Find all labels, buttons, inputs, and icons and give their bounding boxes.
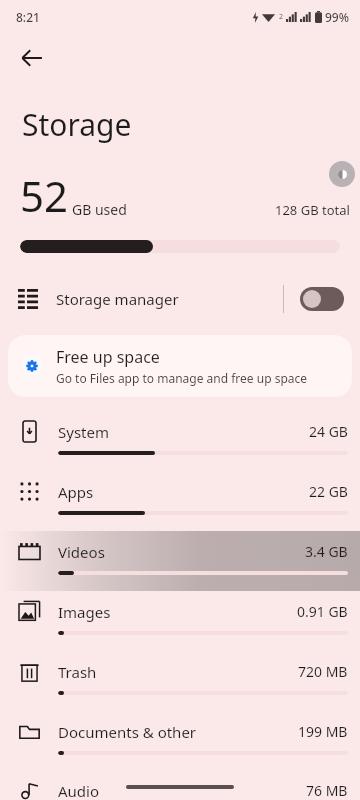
staticText: 128 GB total <box>275 201 350 219</box>
staticText: 3.4 GB <box>305 542 348 561</box>
button[interactable]: Apps <box>0 471 360 531</box>
staticText: 52 <box>20 167 69 224</box>
button[interactable]: Audio <box>0 771 360 800</box>
staticText: Storage manager <box>56 289 283 309</box>
staticText: Go to Files app to manage and free up sp… <box>56 370 308 386</box>
staticText: 24 GB <box>309 422 348 441</box>
button[interactable]: Storage manager <box>0 275 360 323</box>
staticText: Storage <box>22 104 132 145</box>
staticText: Images <box>58 602 297 622</box>
staticText: Free up space <box>56 346 160 368</box>
staticText: Audio <box>58 781 306 800</box>
staticText: Videos <box>58 542 305 562</box>
button[interactable]: Back <box>8 34 56 82</box>
button[interactable]: Storage manager toggle <box>300 287 344 311</box>
button[interactable]: Free up space <box>8 335 352 397</box>
staticText: 22 GB <box>309 482 348 501</box>
staticText: Documents & other <box>58 722 298 742</box>
staticText: 99% <box>325 9 349 25</box>
button[interactable]: System <box>0 411 360 471</box>
staticText: 76 MB <box>306 781 348 800</box>
button[interactable]: Documents & other <box>0 711 360 771</box>
staticText: 720 MB <box>298 662 348 681</box>
staticText: Apps <box>58 482 309 502</box>
staticText: 0.91 GB <box>297 602 348 621</box>
button[interactable]: Videos <box>0 531 360 591</box>
staticText: 8:21 <box>16 9 40 25</box>
staticText: 2 <box>279 12 284 22</box>
staticText: System <box>58 422 309 442</box>
staticText: 199 MB <box>298 722 348 741</box>
button[interactable]: Storage info <box>329 161 355 187</box>
button[interactable]: Trash <box>0 651 360 711</box>
staticText: Trash <box>58 662 298 682</box>
button[interactable]: Images <box>0 591 360 651</box>
staticText: GB used <box>72 200 127 219</box>
